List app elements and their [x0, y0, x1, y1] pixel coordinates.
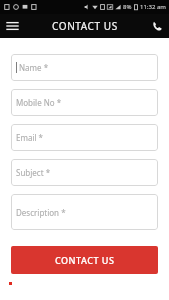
staticText: 11:32 am: [140, 3, 166, 11]
staticText: Name *: [19, 62, 49, 73]
button[interactable]: Mobile No *: [11, 89, 158, 116]
staticText: CONTACT US: [55, 254, 115, 266]
staticText: Description *: [16, 207, 66, 218]
staticText: Mobile No *: [16, 97, 62, 108]
staticText: CONTACT US: [52, 19, 118, 33]
button[interactable]: Call: [148, 17, 166, 35]
button[interactable]: Email *: [11, 124, 158, 151]
button[interactable]: Description *: [11, 194, 158, 230]
staticText: Subject *: [16, 167, 51, 178]
button[interactable]: Open navigation menu: [3, 17, 21, 35]
staticText: Email *: [16, 132, 44, 143]
staticText: 8%: [123, 3, 132, 11]
button[interactable]: CONTACT US: [11, 246, 158, 274]
button[interactable]: Name *: [11, 54, 158, 81]
button[interactable]: Subject *: [11, 159, 158, 186]
